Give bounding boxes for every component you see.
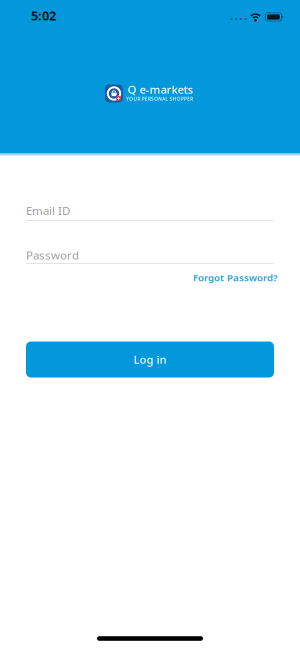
- staticText: Email ID: [26, 203, 70, 218]
- staticText: Password: [26, 247, 79, 263]
- staticText: Forgot Password?: [193, 271, 277, 284]
- button[interactable]: Email ID: [26, 200, 274, 220]
- staticText: YOUR PERSONAL SHOPPER: [126, 95, 193, 102]
- staticText: 5:02: [31, 7, 56, 24]
- button[interactable]: Password: [26, 245, 274, 265]
- staticText: Log in: [133, 352, 166, 367]
- button[interactable]: Log in: [26, 341, 274, 377]
- staticText: Q e-markets: [127, 82, 192, 97]
- button[interactable]: Forgot Password?: [193, 271, 277, 284]
